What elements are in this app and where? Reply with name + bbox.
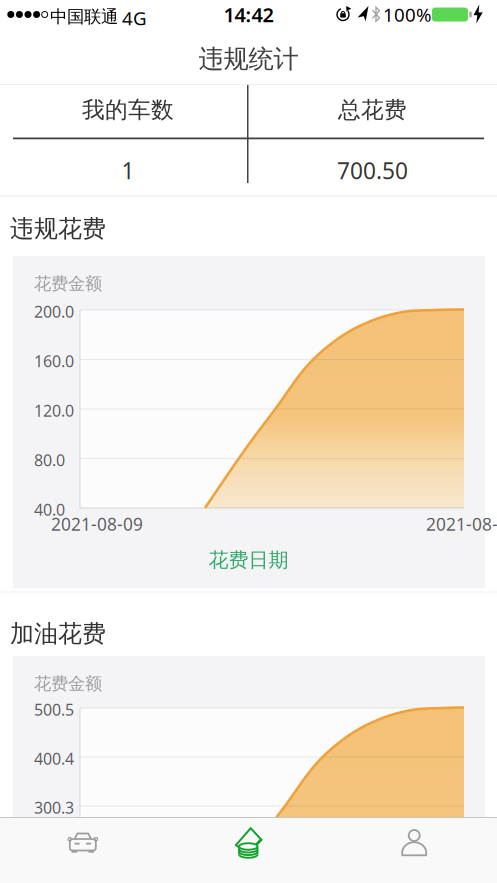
button[interactable]: [166, 817, 331, 883]
staticText: 违规统计: [198, 43, 298, 74]
staticText: 花费日期: [208, 548, 288, 572]
staticText: 2021-08-09: [426, 512, 497, 535]
staticText: 花费金额: [34, 273, 102, 294]
staticText: 500.5: [34, 699, 74, 720]
staticText: 300.3: [34, 797, 74, 818]
staticText: 700.50: [337, 155, 408, 185]
staticText: 1: [121, 155, 134, 185]
staticText: 160.0: [34, 350, 74, 372]
staticText: 总花费: [338, 96, 407, 124]
staticText: 40.0: [34, 499, 65, 520]
staticText: 200.0: [34, 301, 74, 322]
staticText: 100%: [383, 2, 432, 27]
staticText: 花费金额: [34, 673, 102, 694]
button[interactable]: [0, 817, 166, 883]
staticText: 违规花费: [10, 214, 106, 243]
button[interactable]: [331, 817, 497, 883]
staticText: 400.4: [34, 748, 74, 769]
staticText: 80.0: [34, 449, 65, 471]
staticText: 加油花费: [10, 619, 106, 648]
staticText: 14:42: [223, 1, 273, 28]
staticText: 我的车数: [82, 96, 174, 124]
staticText: 2021-08-09: [51, 512, 143, 535]
staticText: 120.0: [34, 400, 74, 421]
staticText: 4G: [122, 5, 147, 30]
staticText: 中国联通: [50, 6, 118, 27]
